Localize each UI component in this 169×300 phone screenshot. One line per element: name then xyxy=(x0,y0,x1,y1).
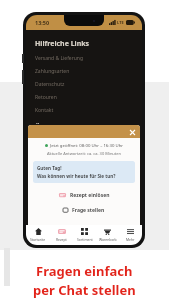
staticText: Mehr xyxy=(126,237,135,242)
staticText: Datenschutz xyxy=(35,81,65,88)
button[interactable]: Datenschutz xyxy=(35,81,142,88)
button[interactable]: Kontakt xyxy=(35,107,142,114)
staticText: Retouren xyxy=(35,94,57,101)
staticText: Hilfreiche Links xyxy=(35,39,90,49)
staticText: Frage stellen xyxy=(72,207,105,214)
staticText: Sortiment xyxy=(77,237,93,242)
button[interactable]: Startseite xyxy=(26,225,50,245)
button[interactable]: Rezept xyxy=(50,225,73,245)
button[interactable]: Retouren xyxy=(35,94,142,101)
staticText: LTE xyxy=(117,20,124,25)
button[interactable]: Mehr xyxy=(119,225,142,245)
button[interactable]: Schließen xyxy=(128,128,136,136)
staticText: Aktuelle Antwortzeit: ca. ca. 30 Minuten xyxy=(28,151,140,156)
staticText: Was können wir heute für Sie tun? xyxy=(37,173,116,179)
staticText: Kontakt xyxy=(35,107,54,114)
staticText: Zahlungsarten xyxy=(35,68,70,75)
button[interactable]: Versand & Lieferung xyxy=(35,55,142,62)
button[interactable]: Frage stellen xyxy=(28,206,140,215)
staticText: per Chat stellen xyxy=(33,281,136,299)
staticText: Fragen einfach xyxy=(36,262,133,280)
button[interactable]: Zahlungsarten xyxy=(35,68,142,75)
button[interactable]: Sortiment xyxy=(73,225,96,245)
staticText: Versand & Lieferung xyxy=(35,55,84,62)
staticText: Startseite xyxy=(30,237,46,242)
button[interactable]: Rezept einlösen xyxy=(28,191,140,200)
staticText: Rezept xyxy=(56,237,67,242)
staticText: Rezept einlösen xyxy=(70,192,110,199)
button[interactable]: Warenkorb xyxy=(96,225,119,245)
staticText: Guten Tag! xyxy=(37,165,62,171)
staticText: Über uns xyxy=(35,123,67,133)
staticText: Warenkorb xyxy=(99,237,117,242)
staticText: Jetzt geöffnet: 08:00 Uhr – 16:30 Uhr xyxy=(50,142,124,148)
staticText: 13:50 xyxy=(35,19,50,26)
